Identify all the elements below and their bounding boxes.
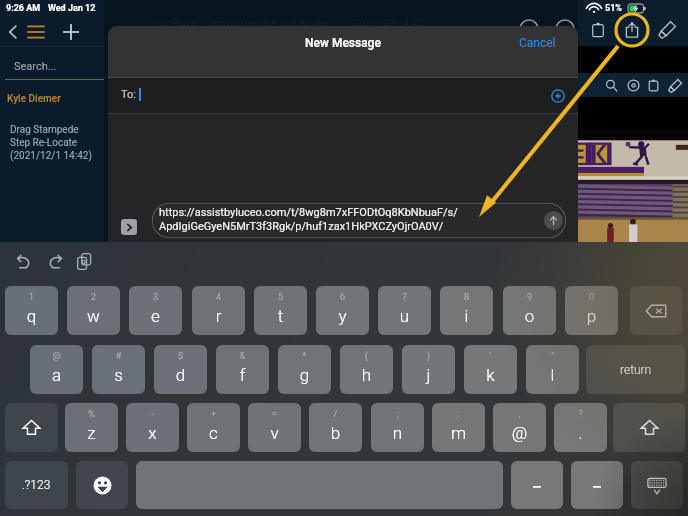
- button[interactable]: $: [154, 345, 207, 394]
- button[interactable]: :: [432, 403, 485, 452]
- staticText: q: [5, 306, 58, 326]
- button[interactable]: 4: [192, 286, 245, 335]
- staticText: +: [187, 409, 240, 420]
- button[interactable]: ;: [371, 403, 424, 452]
- staticText: /: [309, 409, 362, 420]
- button[interactable]: Send: [544, 211, 563, 230]
- staticText: (: [340, 351, 393, 362]
- button[interactable]: 6: [316, 286, 369, 335]
- staticText: 2: [67, 292, 120, 303]
- staticText: Kyle Diemer: [7, 93, 61, 105]
- staticText: v: [248, 423, 301, 443]
- staticText: #: [92, 351, 145, 362]
- button[interactable]: 9: [503, 286, 556, 335]
- button[interactable]: /: [309, 403, 362, 452]
- button[interactable]: ): [402, 345, 455, 394]
- button[interactable]: Paste: [71, 248, 97, 274]
- staticText: ": [526, 351, 579, 362]
- button[interactable]: Kyle Diemer: [7, 93, 61, 105]
- staticText: To:: [121, 88, 136, 101]
- button[interactable]: Record: [626, 78, 641, 93]
- staticText: =: [248, 409, 301, 420]
- button[interactable]: ': [464, 345, 517, 394]
- button[interactable]: +: [187, 403, 240, 452]
- staticText: &: [216, 351, 269, 362]
- staticText: i: [440, 306, 493, 326]
- staticText: w: [67, 306, 120, 326]
- staticText: Halo Player Draw Screenshot Save Review …: [152, 18, 425, 29]
- button[interactable]: Apps: [121, 219, 137, 235]
- staticText: ?: [554, 409, 607, 420]
- button[interactable]: Add contact: [551, 89, 565, 103]
- staticText: c: [187, 423, 240, 443]
- button[interactable]: 2: [67, 286, 120, 335]
- staticText: 6: [316, 292, 369, 303]
- button[interactable]: ?: [554, 403, 607, 452]
- button[interactable]: Pen: [667, 78, 682, 93]
- staticText: f: [216, 365, 269, 385]
- button[interactable]: Search...: [14, 60, 57, 73]
- staticText: Cancel: [519, 36, 556, 50]
- staticText: k: [464, 365, 517, 385]
- button[interactable]: =: [248, 403, 301, 452]
- staticText: 7: [378, 292, 431, 303]
- staticText: 0: [565, 292, 618, 303]
- staticText: 4: [192, 292, 245, 303]
- staticText: a: [30, 365, 83, 385]
- button[interactable]: Add: [60, 21, 82, 43]
- button[interactable]: (: [340, 345, 393, 394]
- button[interactable]: Share: [621, 19, 643, 41]
- staticText: .: [554, 423, 607, 443]
- button[interactable]: 8: [440, 286, 493, 335]
- button[interactable]: &: [216, 345, 269, 394]
- button[interactable]: 3: [129, 286, 182, 335]
- button[interactable]: Redo: [41, 248, 67, 274]
- button[interactable]: Hide keyboard: [631, 461, 683, 509]
- button[interactable]: Cancel: [519, 36, 556, 50]
- button[interactable]: #: [92, 345, 145, 394]
- button[interactable]: 1: [5, 286, 58, 335]
- button[interactable]: Shift: [613, 403, 685, 452]
- button[interactable]: Dash: [511, 461, 563, 509]
- staticText: j: [402, 365, 455, 385]
- button[interactable]: Emoji: [76, 461, 128, 509]
- staticText: 1: [5, 292, 58, 303]
- button[interactable]: ": [526, 345, 579, 394]
- staticText: l: [526, 365, 579, 385]
- staticText: g: [278, 365, 331, 385]
- staticText: Drag Stampede Step Re-Locate (2021/12/1 …: [10, 124, 92, 162]
- button[interactable]: 5: [254, 286, 307, 335]
- staticText: z: [65, 423, 118, 443]
- staticText: y: [316, 306, 369, 326]
- button[interactable]: Shift: [5, 403, 58, 452]
- button[interactable]: return: [586, 345, 685, 394]
- button[interactable]: Back: [2, 21, 24, 43]
- staticText: .?123: [22, 478, 51, 492]
- staticText: *: [278, 351, 331, 362]
- staticText: $: [154, 351, 207, 362]
- button[interactable]: .?123: [5, 461, 68, 509]
- staticText: h: [340, 365, 393, 385]
- button[interactable]: Undo: [11, 248, 37, 274]
- button[interactable]: *: [278, 345, 331, 394]
- staticText: n: [371, 423, 424, 443]
- button[interactable]: ,: [493, 403, 546, 452]
- button[interactable]: 0: [565, 286, 618, 335]
- staticText: https://assistbyluceo.com/t/8wg8m7xFFODt…: [159, 206, 458, 233]
- staticText: 9: [503, 292, 556, 303]
- button[interactable]: @: [30, 345, 83, 394]
- staticText: 9:26 AM: [6, 3, 41, 14]
- button[interactable]: %: [65, 403, 118, 452]
- button[interactable]: Highlighter: [656, 19, 678, 41]
- button[interactable]: -: [126, 403, 179, 452]
- staticText: 51%: [605, 3, 622, 14]
- button[interactable]: 7: [378, 286, 431, 335]
- button[interactable]: Dash: [571, 461, 623, 509]
- button[interactable]: Notes: [646, 78, 661, 93]
- button[interactable]: Search: [604, 78, 619, 93]
- button[interactable]: Menu: [25, 21, 47, 43]
- button[interactable]: Clipboard: [587, 19, 609, 41]
- button[interactable]: Backspace: [630, 286, 682, 335]
